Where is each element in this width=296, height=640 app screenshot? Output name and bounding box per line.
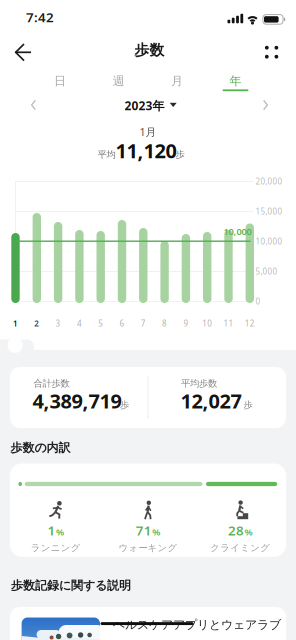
- button[interactable]: 月: [153, 68, 201, 94]
- staticText: 3: [56, 318, 61, 329]
- staticText: %: [245, 526, 253, 538]
- staticText: 10,000: [255, 236, 282, 247]
- staticText: 12,027: [180, 387, 241, 414]
- staticText: 歩数: [134, 41, 164, 59]
- staticText: 15,000: [255, 206, 282, 217]
- staticText: 12: [245, 318, 255, 329]
- staticText: %: [56, 526, 64, 538]
- button[interactable]: 週: [94, 68, 142, 94]
- staticText: 10: [202, 318, 212, 329]
- staticText: 11: [223, 318, 233, 329]
- staticText: 歩: [120, 399, 129, 411]
- button[interactable]: 戻る: [3, 32, 43, 72]
- staticText: 合計歩数: [33, 378, 69, 389]
- staticText: 11,120: [115, 137, 176, 164]
- staticText: 1: [47, 521, 55, 539]
- staticText: ランニング: [31, 542, 81, 554]
- staticText: クライミング: [210, 542, 270, 554]
- staticText: ヘルスケアアプリとウェアラブ: [113, 617, 281, 632]
- staticText: 平均歩数: [181, 378, 217, 389]
- staticText: 7: [141, 318, 146, 329]
- staticText: 2: [34, 318, 39, 329]
- button[interactable]: メニュー: [252, 34, 292, 70]
- staticText: 週: [112, 74, 124, 88]
- staticText: 1: [13, 318, 18, 329]
- staticText: 1月: [139, 125, 156, 139]
- staticText: 歩: [243, 399, 252, 411]
- staticText: 20,000: [255, 176, 282, 187]
- button[interactable]: 日: [36, 68, 84, 94]
- staticText: 4: [77, 318, 82, 329]
- staticText: 日: [54, 74, 66, 88]
- button[interactable]: 次の年: [247, 90, 283, 120]
- staticText: 0: [255, 296, 260, 307]
- staticText: 平均: [97, 149, 115, 160]
- staticText: 月: [171, 74, 183, 88]
- button[interactable]: 前の年: [15, 90, 51, 120]
- staticText: 5: [98, 318, 103, 329]
- staticText: 歩数の内訳: [10, 440, 70, 455]
- staticText: %: [152, 526, 160, 538]
- button[interactable]: 年: [211, 68, 259, 94]
- staticText: 歩: [175, 149, 184, 160]
- staticText: 8: [162, 318, 167, 329]
- button[interactable]: 年を選択: [108, 90, 188, 120]
- staticText: 5,000: [255, 266, 277, 277]
- staticText: 10,000: [223, 225, 251, 237]
- button[interactable]: 歩数記録に関する説明記事: [10, 607, 286, 640]
- staticText: 6: [119, 318, 124, 329]
- staticText: 歩数記録に関する説明: [11, 578, 131, 593]
- staticText: 28: [228, 521, 244, 539]
- staticText: 9: [183, 318, 188, 329]
- staticText: 2023年: [124, 97, 164, 113]
- staticText: 4,389,719: [32, 387, 121, 414]
- staticText: 年: [229, 74, 241, 88]
- staticText: 71: [136, 521, 152, 539]
- staticText: 7:42: [26, 8, 54, 26]
- staticText: ウォーキング: [118, 542, 177, 554]
